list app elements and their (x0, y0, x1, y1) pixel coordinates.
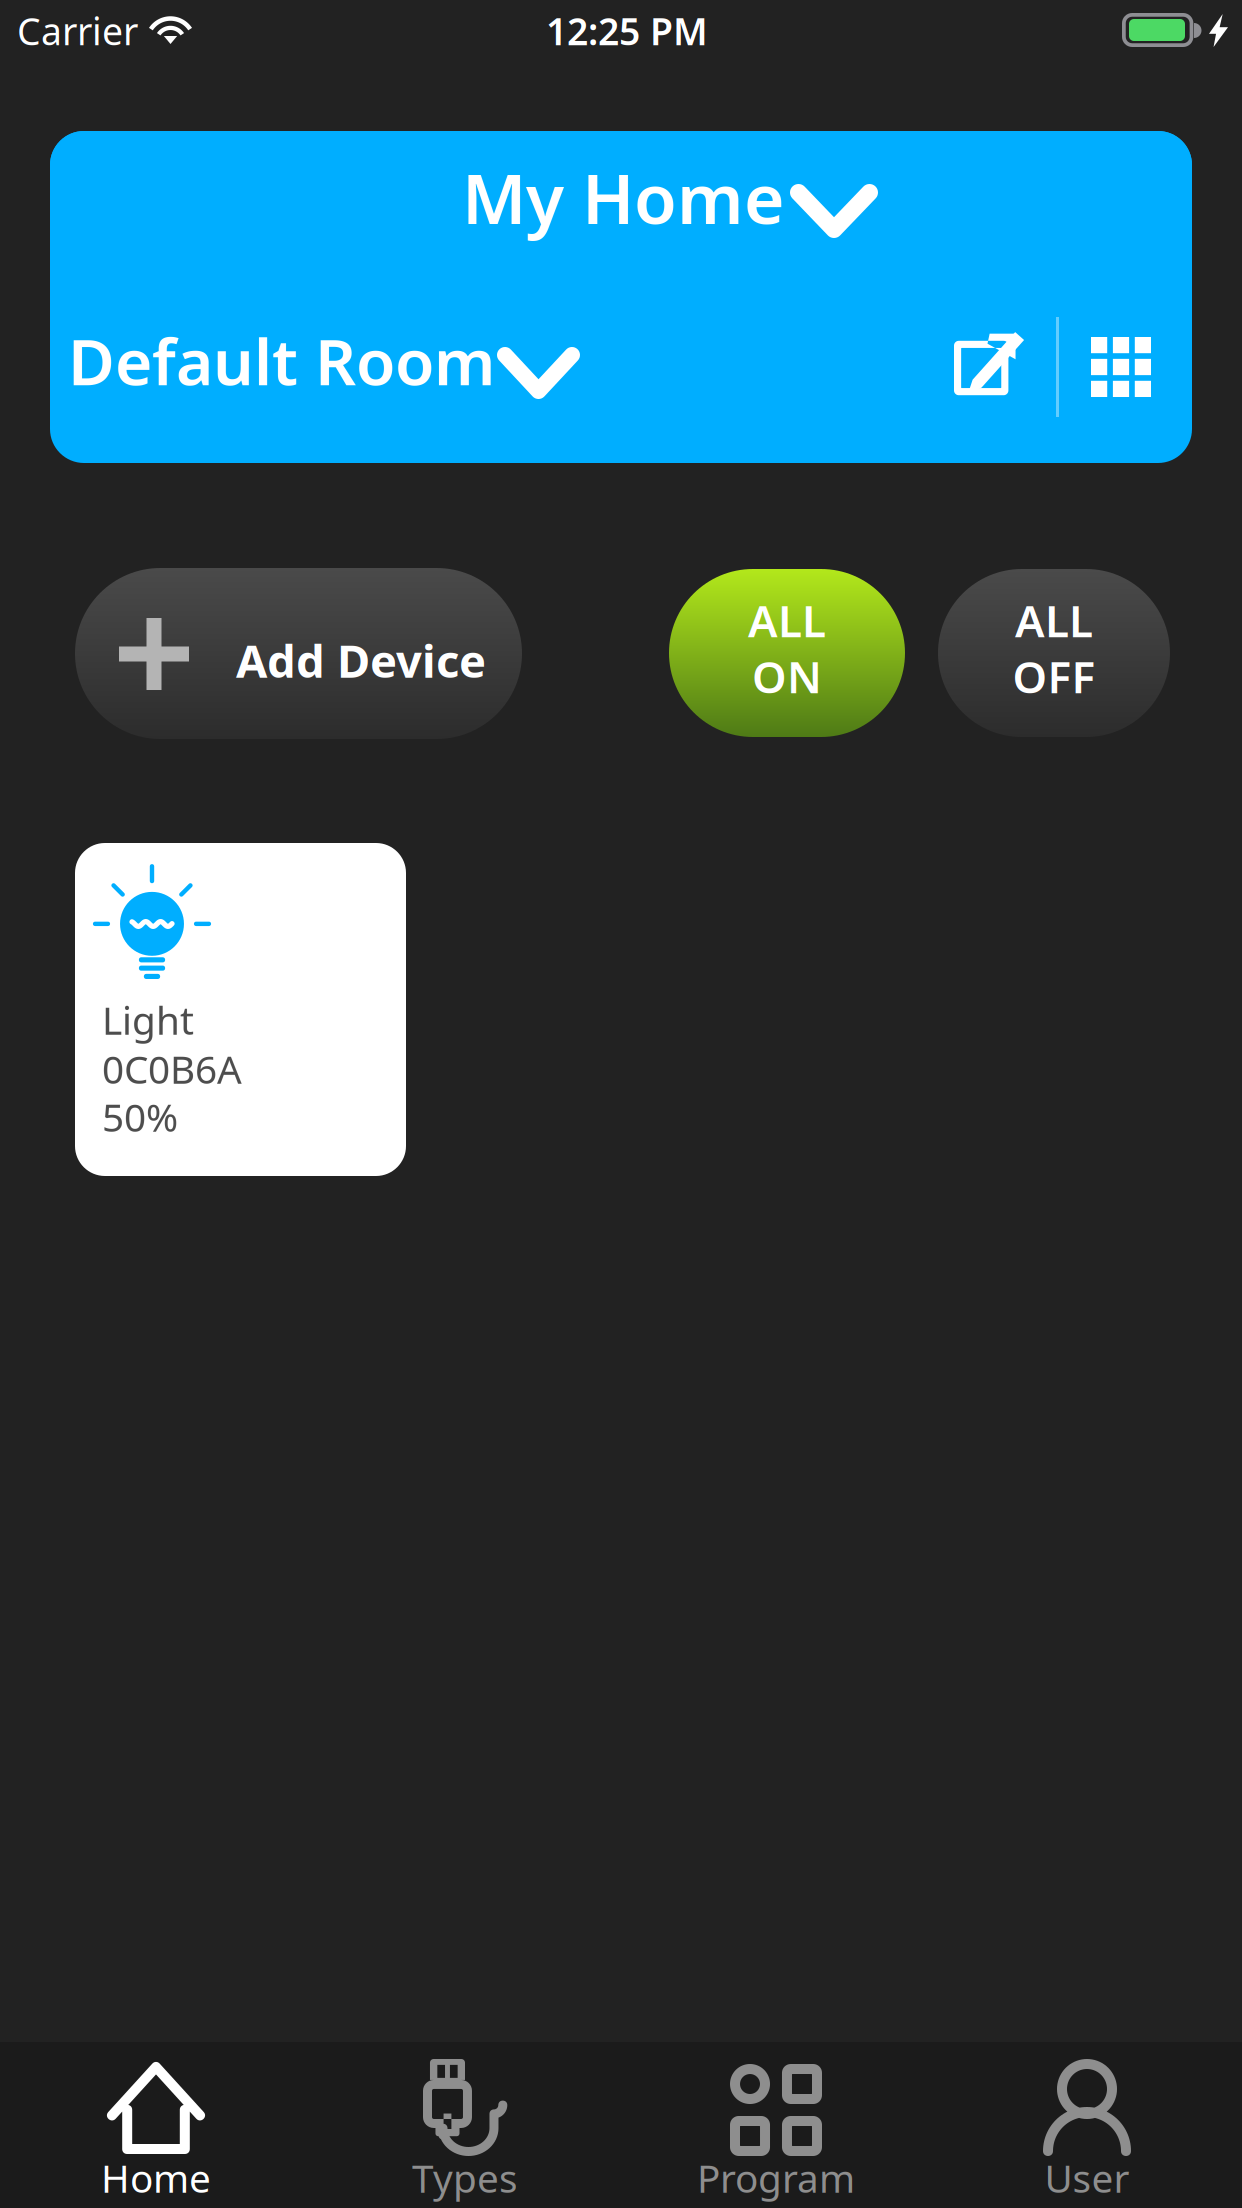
staticText: Light (102, 994, 194, 1045)
button[interactable]: Light (75, 843, 406, 1176)
button[interactable]: Add Device (75, 568, 522, 739)
button[interactable]: Home (1, 2042, 311, 2208)
staticText: 50% (102, 1091, 178, 1142)
button[interactable]: ALL (669, 569, 905, 737)
staticText: Carrier (17, 6, 138, 56)
staticText: Types (412, 2152, 518, 2203)
staticText: Program (697, 2152, 855, 2203)
staticText: Home (101, 2152, 211, 2203)
staticText: Add Device (236, 630, 486, 690)
button[interactable]: ALL (938, 569, 1170, 737)
staticText: Default Room (68, 318, 495, 403)
staticText: ALL (1015, 591, 1093, 649)
button[interactable]: User (932, 2042, 1242, 2208)
staticText: 12:25 PM (546, 6, 708, 56)
button[interactable]: Grid layout (1061, 307, 1181, 427)
button[interactable]: Edit (928, 307, 1048, 427)
button[interactable]: Types (310, 2042, 620, 2208)
staticText: User (1044, 2152, 1129, 2203)
staticText: ON (752, 647, 822, 705)
button[interactable]: Default Room (56, 307, 616, 427)
button[interactable]: Program (621, 2042, 931, 2208)
staticText: 0C0B6A (102, 1043, 242, 1094)
staticText: OFF (1012, 647, 1095, 705)
staticText: My Home (462, 151, 785, 243)
staticText: ALL (748, 591, 826, 649)
button[interactable]: My Home (50, 131, 1192, 271)
